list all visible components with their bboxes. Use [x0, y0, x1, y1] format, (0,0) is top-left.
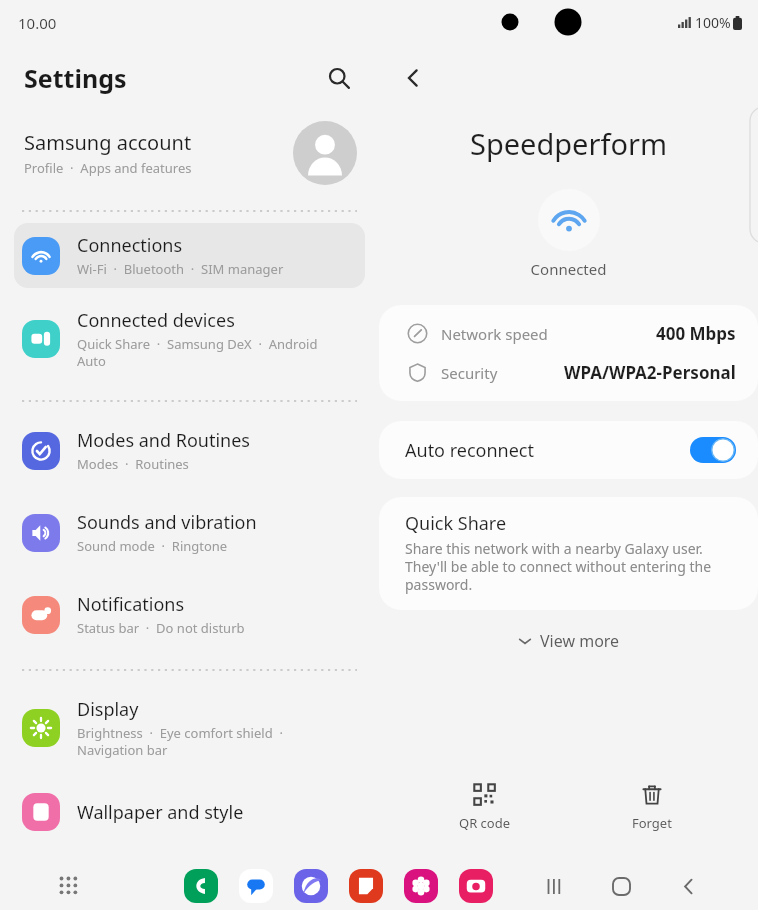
staticText: Speedperform [379, 124, 758, 163]
staticText: Profile · Apps and features [24, 159, 192, 177]
button[interactable]: Recents [537, 869, 571, 903]
button[interactable]: Connections [14, 223, 365, 288]
staticText: Brightness · Eye comfort shield · Naviga… [77, 724, 283, 759]
button[interactable]: Network speed [379, 305, 758, 401]
staticText: View more [540, 630, 620, 652]
staticText: Modes · Routines [77, 455, 189, 473]
button[interactable]: Sounds and vibration [14, 500, 365, 565]
staticText: 100% [695, 13, 731, 32]
button[interactable]: Back [391, 56, 435, 100]
button[interactable]: QR code [401, 779, 568, 836]
staticText: QR code [459, 814, 511, 832]
button[interactable]: Phone [184, 869, 218, 903]
button[interactable]: Forget [568, 779, 736, 836]
staticText: Settings [24, 61, 127, 95]
button[interactable]: Camera [459, 869, 493, 903]
button[interactable]: Apps [52, 869, 86, 903]
button[interactable]: View more [379, 624, 758, 658]
staticText: Modes and Routines [77, 428, 250, 453]
staticText: Network speed [441, 324, 548, 344]
staticText: Display [77, 697, 139, 722]
staticText: Connections [77, 233, 183, 258]
button[interactable]: Auto reconnect [379, 421, 758, 479]
staticText: Sound mode · Ringtone [77, 537, 228, 555]
button[interactable]: Search [317, 56, 361, 100]
button[interactable]: Back [671, 869, 705, 903]
button[interactable]: Modes and Routines [14, 418, 365, 483]
button[interactable]: Notifications [14, 582, 365, 647]
button[interactable]: Notes [349, 869, 383, 903]
button[interactable]: Internet [294, 869, 328, 903]
button[interactable]: Gallery [404, 869, 438, 903]
button[interactable]: Quick Share [379, 497, 758, 610]
staticText: Wallpaper and style [77, 800, 244, 825]
staticText: Status bar · Do not disturb [77, 619, 245, 637]
button[interactable]: Home [604, 869, 638, 903]
staticText: Quick Share · Samsung DeX · Android Auto [77, 335, 318, 370]
staticText: 400 Mbps [656, 322, 736, 345]
button[interactable]: Messages [239, 869, 273, 903]
staticText: Wi-Fi · Bluetooth · SIM manager [77, 260, 284, 278]
staticText: Forget [632, 814, 672, 832]
staticText: Connected [379, 259, 758, 279]
staticText: Auto reconnect [405, 438, 690, 463]
staticText: Notifications [77, 592, 185, 617]
button[interactable]: Connected devices [14, 298, 365, 380]
staticText: Samsung account [24, 129, 192, 156]
staticText: WPA/WPA2-Personal [564, 361, 736, 384]
staticText: 10.00 [18, 13, 57, 33]
staticText: Quick Share [405, 511, 507, 536]
staticText: Security [441, 363, 498, 383]
button[interactable]: Wallpaper and style [14, 783, 365, 841]
staticText: Connected devices [77, 308, 235, 333]
button[interactable]: Display [14, 687, 365, 769]
button[interactable]: Samsung account [0, 110, 379, 196]
staticText: Share this network with a nearby Galaxy … [405, 539, 712, 594]
staticText: Sounds and vibration [77, 510, 257, 535]
